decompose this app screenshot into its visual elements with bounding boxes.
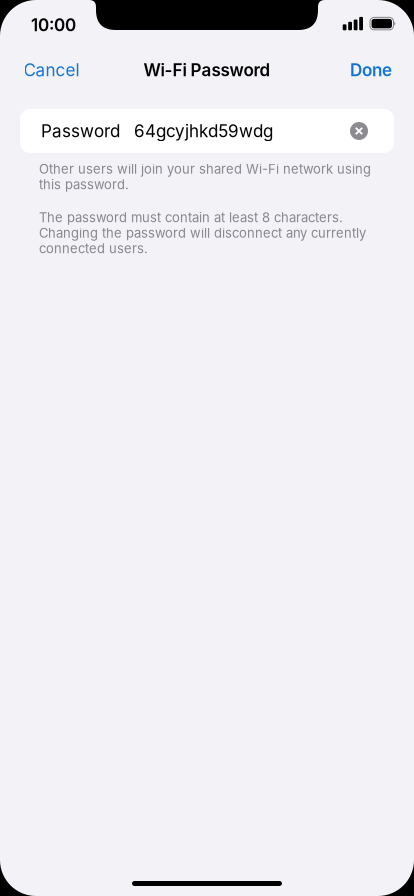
staticText: 10:00 xyxy=(31,15,76,35)
staticText: Done xyxy=(350,60,392,80)
button[interactable]: Password xyxy=(20,109,394,153)
staticText: Cancel xyxy=(23,60,79,80)
staticText: The password must contain at least 8 cha… xyxy=(39,210,343,225)
staticText: 64gcyjhkd59wdg xyxy=(134,121,273,141)
staticText: Wi-Fi Password xyxy=(143,60,270,80)
button[interactable]: Cancel xyxy=(23,60,79,80)
button[interactable]: Clear text xyxy=(350,122,368,140)
staticText: Password xyxy=(41,121,120,141)
staticText: Other users will join your shared Wi-Fi … xyxy=(39,161,371,177)
staticText: this password. xyxy=(39,177,129,192)
staticText: connected users. xyxy=(39,241,148,256)
staticText: Changing the password will disconnect an… xyxy=(39,225,366,241)
button[interactable]: Done xyxy=(350,60,392,80)
